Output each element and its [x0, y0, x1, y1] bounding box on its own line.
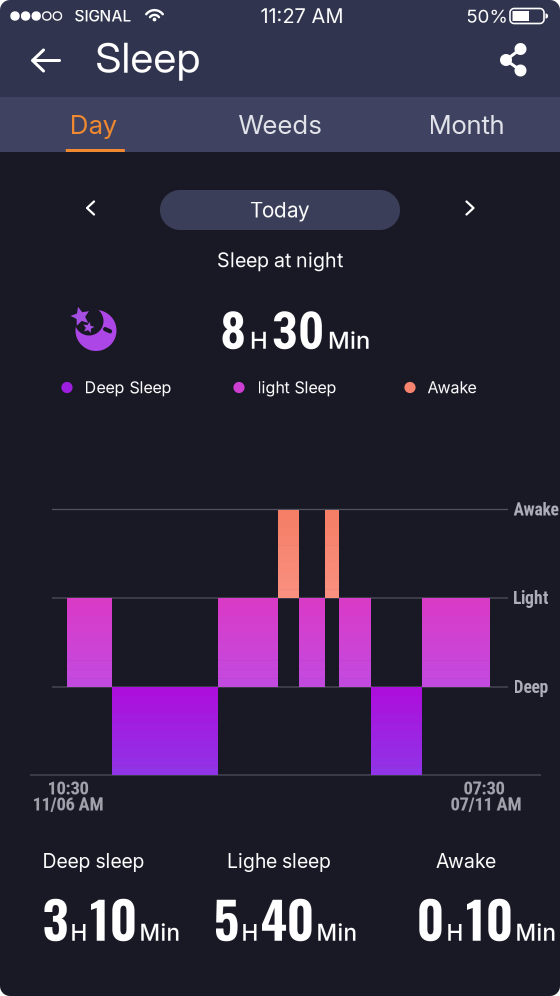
button[interactable]: Month: [373, 97, 560, 152]
staticText: Deep sleep: [42, 849, 144, 873]
button[interactable]: [76, 194, 104, 222]
staticText: 07/11 AM: [450, 793, 521, 815]
staticText: Weeds: [238, 109, 321, 140]
button[interactable]: [456, 194, 484, 222]
staticText: Month: [429, 109, 505, 140]
staticText: Lighe sleep: [227, 849, 331, 873]
staticText: Deep: [513, 677, 548, 697]
staticText: Sleep at night: [217, 248, 343, 272]
staticText: light Sleep: [257, 378, 336, 397]
staticText: 11:27 AM: [260, 4, 343, 28]
staticText: Awake: [436, 849, 496, 873]
staticText: Today: [250, 197, 310, 222]
button[interactable]: [496, 39, 530, 80]
staticText: 11/06 AM: [32, 793, 103, 815]
staticText: 5 H 40 Min: [213, 880, 356, 955]
staticText: Day: [70, 109, 117, 140]
staticText: 0 H 10 Min: [416, 880, 555, 955]
button[interactable]: [29, 42, 65, 78]
staticText: 07:30: [463, 777, 504, 799]
staticText: 10:30: [47, 777, 88, 799]
staticText: Awake: [513, 499, 558, 520]
staticText: Deep Sleep: [84, 378, 171, 397]
staticText: 8 H 30 Min: [220, 301, 370, 361]
button[interactable]: Today: [160, 190, 400, 230]
button[interactable]: Weeds: [187, 97, 373, 152]
staticText: 50%: [466, 5, 507, 27]
staticText: 3 H 10 Min: [42, 880, 179, 955]
button[interactable]: Day: [0, 97, 187, 152]
staticText: Light: [513, 588, 548, 608]
staticText: SIGNAL: [74, 7, 131, 25]
staticText: Sleep: [95, 32, 200, 83]
staticText: Awake: [427, 378, 476, 397]
